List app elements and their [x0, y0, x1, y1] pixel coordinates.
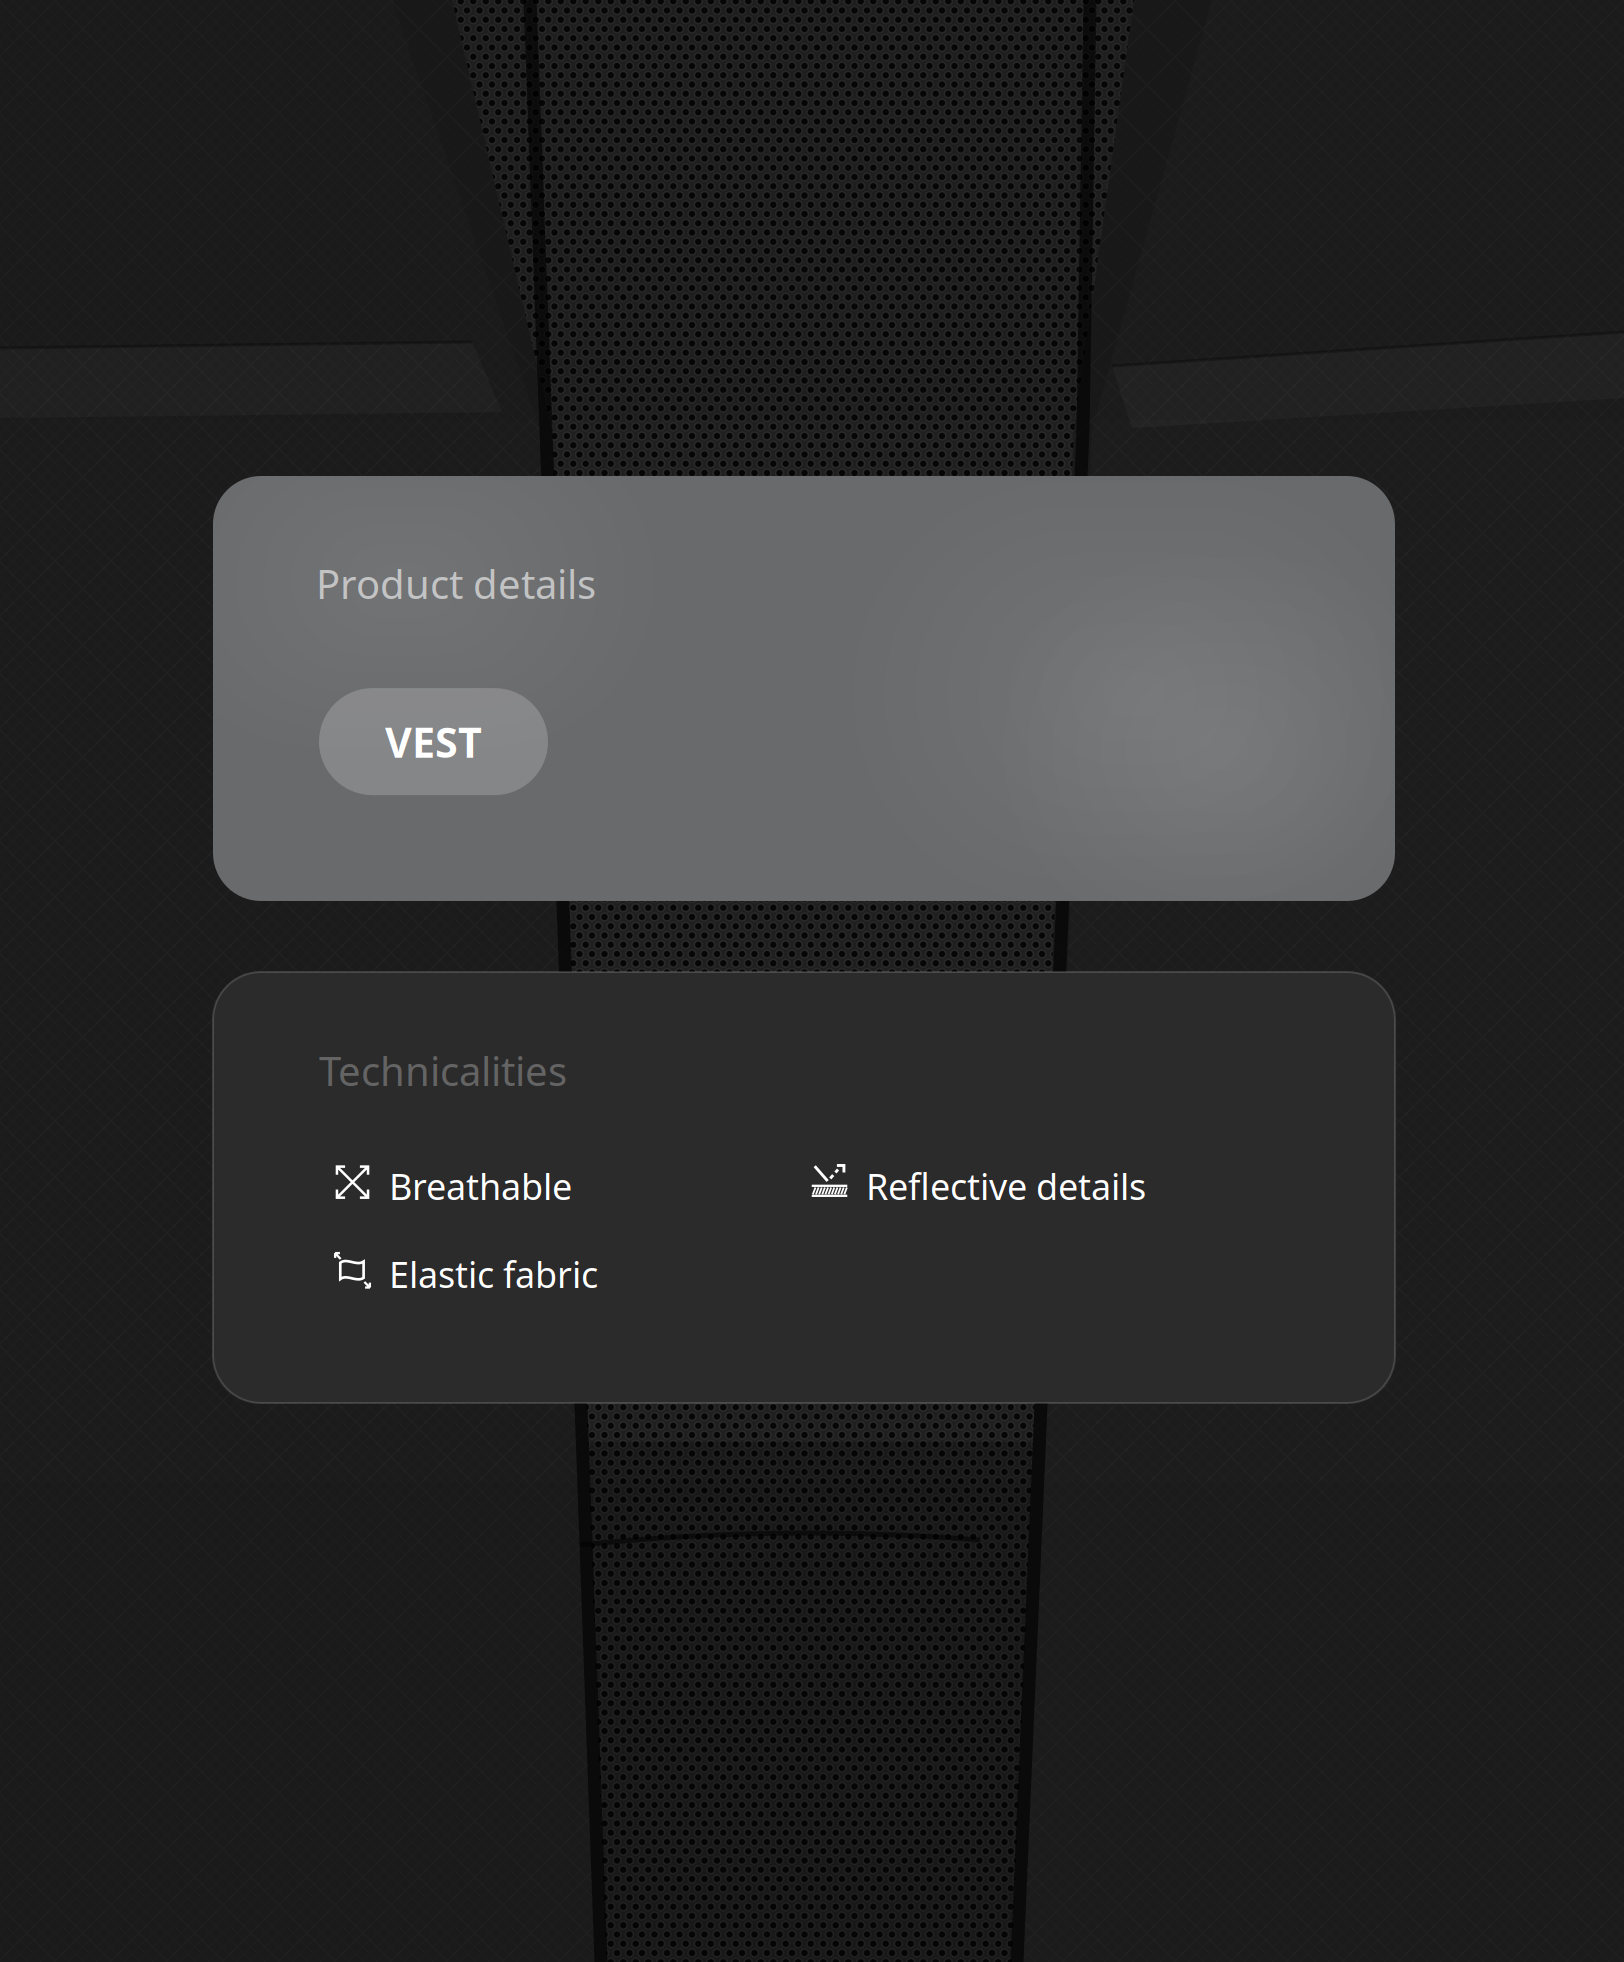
- button[interactable]: Elastic fabric: [334, 1246, 811, 1294]
- button[interactable]: Reflective details: [811, 1158, 1281, 1206]
- button[interactable]: Breathable: [334, 1158, 811, 1206]
- staticText: Elastic fabric: [389, 1250, 598, 1298]
- staticText: Breathable: [389, 1162, 572, 1210]
- button[interactable]: VEST: [319, 688, 548, 795]
- staticText: Product details: [316, 557, 596, 610]
- staticText: Reflective details: [866, 1162, 1146, 1210]
- staticText: Technicalities: [319, 1044, 567, 1097]
- staticText: VEST: [385, 714, 482, 769]
